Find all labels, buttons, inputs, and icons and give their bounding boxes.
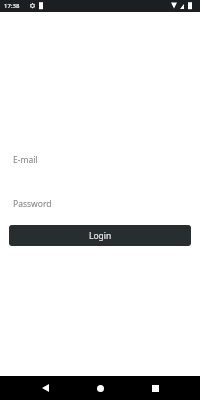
staticText: E-mail xyxy=(13,154,38,166)
button[interactable]: E-mail xyxy=(9,145,191,175)
staticText: Login xyxy=(89,230,112,242)
button[interactable]: Back xyxy=(25,376,65,400)
staticText: Password xyxy=(13,198,52,210)
button[interactable]: Password xyxy=(9,189,191,219)
button[interactable]: Home xyxy=(80,376,120,400)
button[interactable]: Login xyxy=(9,225,191,246)
staticText: 17:38 xyxy=(4,2,20,10)
button[interactable]: Recent apps xyxy=(135,376,175,400)
